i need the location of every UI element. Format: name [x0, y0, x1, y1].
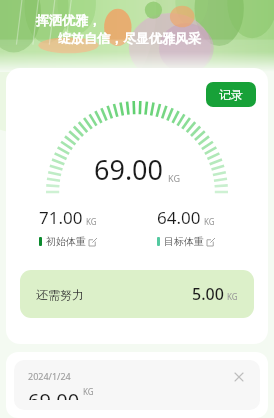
- other: Edit 目标体重: [207, 238, 215, 246]
- button[interactable]: 还需努力: [20, 270, 254, 318]
- staticText: 71.00: [39, 206, 83, 229]
- button[interactable]: 2024/1/24: [14, 360, 260, 410]
- button[interactable]: Delete record: [232, 370, 246, 384]
- staticText: KG: [83, 386, 94, 397]
- staticText: KG: [86, 216, 97, 227]
- staticText: 还需努力: [36, 287, 84, 302]
- staticText: 初始体重: [46, 235, 86, 248]
- staticText: KG: [204, 216, 215, 227]
- staticText: 挥洒优雅，: [36, 12, 101, 28]
- staticText: 64.00: [157, 206, 201, 229]
- button[interactable]: 71.00: [6, 206, 137, 248]
- staticText: 69.00: [94, 151, 164, 188]
- other: Edit 初始体重: [89, 238, 97, 246]
- staticText: 69.00: [28, 387, 80, 400]
- staticText: 绽放自信，尽显优雅风采: [58, 30, 201, 46]
- staticText: 目标体重: [164, 235, 204, 248]
- button[interactable]: 64.00: [137, 206, 268, 248]
- staticText: KG: [227, 291, 238, 302]
- staticText: 2024/1/24: [28, 370, 71, 382]
- staticText: 记录: [219, 87, 243, 102]
- staticText: KG: [168, 172, 180, 184]
- staticText: 5.00: [192, 283, 224, 305]
- button[interactable]: 记录: [206, 82, 256, 107]
